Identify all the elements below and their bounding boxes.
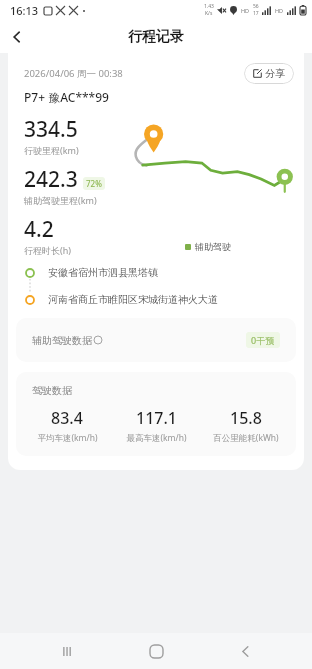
staticText: 最高车速(km/h): [126, 432, 187, 444]
staticText: 行程记录: [128, 28, 184, 46]
staticText: 辅助驾驶里程(km): [24, 194, 97, 206]
staticText: 安徽省宿州市泗县黑塔镇: [48, 266, 158, 279]
staticText: K/s: [205, 10, 213, 17]
staticText: 辅助驾驶: [195, 241, 231, 252]
button[interactable]: 分享: [244, 63, 294, 84]
staticText: 83.4: [51, 407, 83, 429]
staticText: 242.3: [24, 165, 78, 194]
staticText: 56: [253, 3, 259, 10]
staticText: 河南省商丘市睢阳区宋城街道神火大道: [48, 293, 218, 306]
staticText: 行驶里程(km): [24, 144, 79, 156]
staticText: 2026/04/06 周一 00:38: [24, 67, 123, 80]
staticText: 分享: [265, 67, 285, 80]
staticText: 15.8: [230, 407, 262, 429]
staticText: 117.1: [136, 407, 177, 429]
staticText: 0干预: [251, 334, 275, 346]
staticText: 驾驶数据: [32, 384, 72, 397]
staticText: 16:13: [10, 3, 39, 18]
staticText: 行程时长(h): [24, 244, 71, 256]
staticText: HD: [275, 7, 284, 14]
staticText: 1.43: [204, 3, 214, 10]
staticText: 72%: [86, 178, 102, 189]
staticText: P7+ 豫AC***99: [24, 89, 109, 105]
staticText: 辅助驾驶数据: [32, 334, 92, 347]
button[interactable]: Back: [223, 633, 267, 669]
button[interactable]: Back: [0, 20, 33, 53]
staticText: 平均车速(km/h): [37, 432, 98, 444]
button[interactable]: Recent apps: [45, 633, 89, 669]
button[interactable]: Home: [134, 633, 178, 669]
staticText: 4.2: [24, 215, 54, 244]
staticText: 百公里能耗(kWh): [213, 432, 279, 444]
staticText: 17: [253, 10, 259, 17]
staticText: 334.5: [24, 115, 78, 144]
staticText: HD: [241, 7, 250, 14]
